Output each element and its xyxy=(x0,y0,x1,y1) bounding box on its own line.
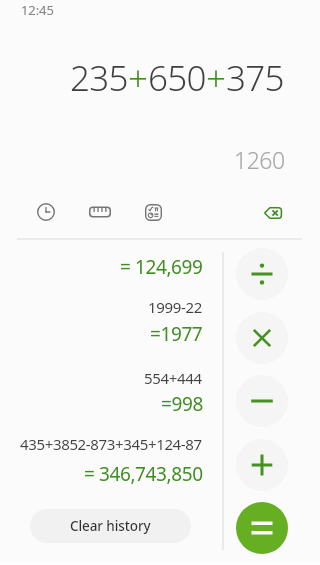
staticText: Clear history xyxy=(70,517,151,535)
button[interactable]: 435+3852-873+345+124-87 xyxy=(0,429,222,497)
staticText: 554+444 xyxy=(144,368,202,388)
button[interactable]: Clear history xyxy=(30,509,191,543)
button[interactable]: Add xyxy=(236,439,288,491)
staticText: =1977 xyxy=(150,321,203,347)
staticText: 375 xyxy=(226,54,284,102)
button[interactable]: Multiply xyxy=(236,312,288,364)
staticText: = 124,699 xyxy=(120,254,203,280)
staticText: 1260 xyxy=(234,144,285,175)
button[interactable]: 554+444 xyxy=(0,363,222,431)
button[interactable]: 1999-22 xyxy=(0,292,222,360)
button[interactable]: Unit converter xyxy=(82,194,118,230)
button[interactable]: History xyxy=(28,194,64,230)
staticText: =998 xyxy=(161,391,203,417)
button[interactable]: Divide xyxy=(236,248,288,300)
staticText: + xyxy=(128,54,148,102)
staticText: 1999-22 xyxy=(148,297,202,317)
button[interactable]: Subtract xyxy=(236,375,288,427)
staticText: 435+3852-873+345+124-87 xyxy=(20,434,202,454)
button[interactable]: = 124,699 xyxy=(0,248,222,292)
staticText: 12:45 xyxy=(21,1,54,19)
staticText: = 346,743,850 xyxy=(84,461,203,487)
staticText: 650 xyxy=(148,54,206,102)
button[interactable]: Equals xyxy=(236,502,288,554)
staticText: + xyxy=(206,54,226,102)
button[interactable]: Backspace xyxy=(255,195,291,231)
button[interactable]: Scientific calculator xyxy=(135,194,171,230)
staticText: 235 xyxy=(70,54,128,102)
